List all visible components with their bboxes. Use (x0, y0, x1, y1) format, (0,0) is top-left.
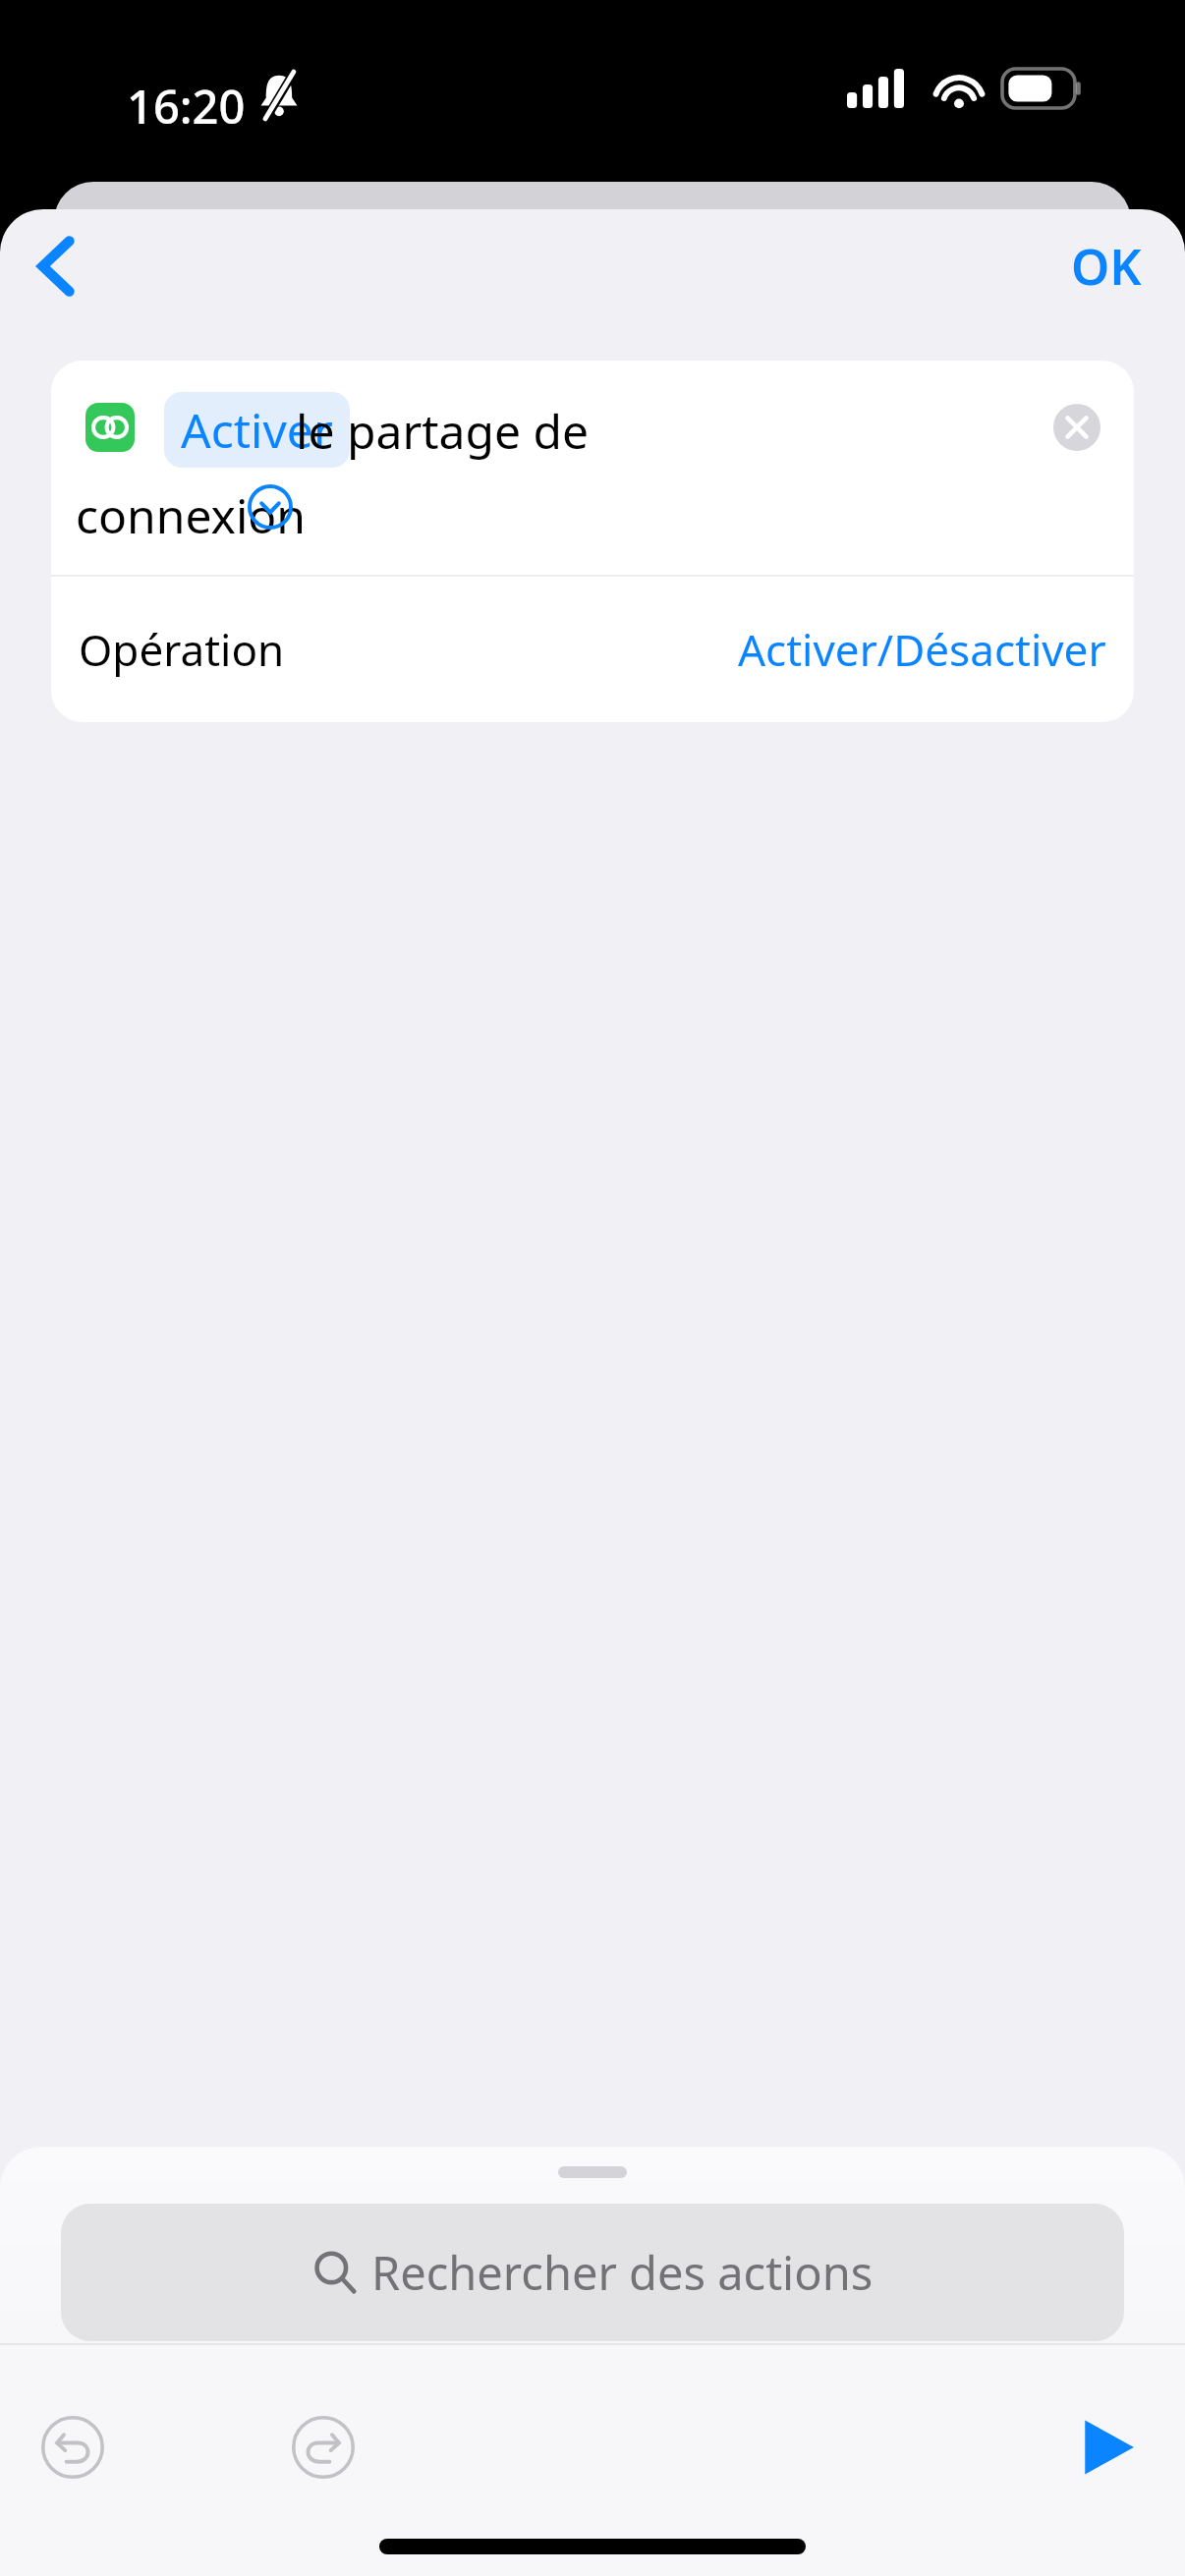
button[interactable]: Opération (51, 577, 1134, 722)
staticText: Activer/Désactiver (738, 620, 1106, 679)
button[interactable]: Activer (164, 392, 350, 468)
button[interactable]: OK (1055, 223, 1157, 309)
button[interactable]: Undo (28, 2402, 118, 2492)
staticText: OK (1071, 233, 1142, 300)
button[interactable]: Rechercher des actions (61, 2204, 1124, 2341)
button[interactable]: Activer (51, 361, 1134, 575)
staticText: Rechercher des actions (371, 2241, 874, 2304)
button[interactable]: Run shortcut (1061, 2400, 1156, 2494)
button[interactable]: Expand options (241, 477, 300, 536)
button[interactable]: Remove action (1049, 400, 1104, 455)
staticText: le partage de (296, 399, 590, 463)
staticText: connexion (76, 483, 307, 547)
staticText: Opération (79, 620, 285, 679)
button[interactable]: Redo (278, 2402, 368, 2492)
staticText: 16:20 (127, 75, 246, 138)
staticText: Activer (181, 398, 333, 462)
button[interactable]: Back (14, 224, 98, 308)
